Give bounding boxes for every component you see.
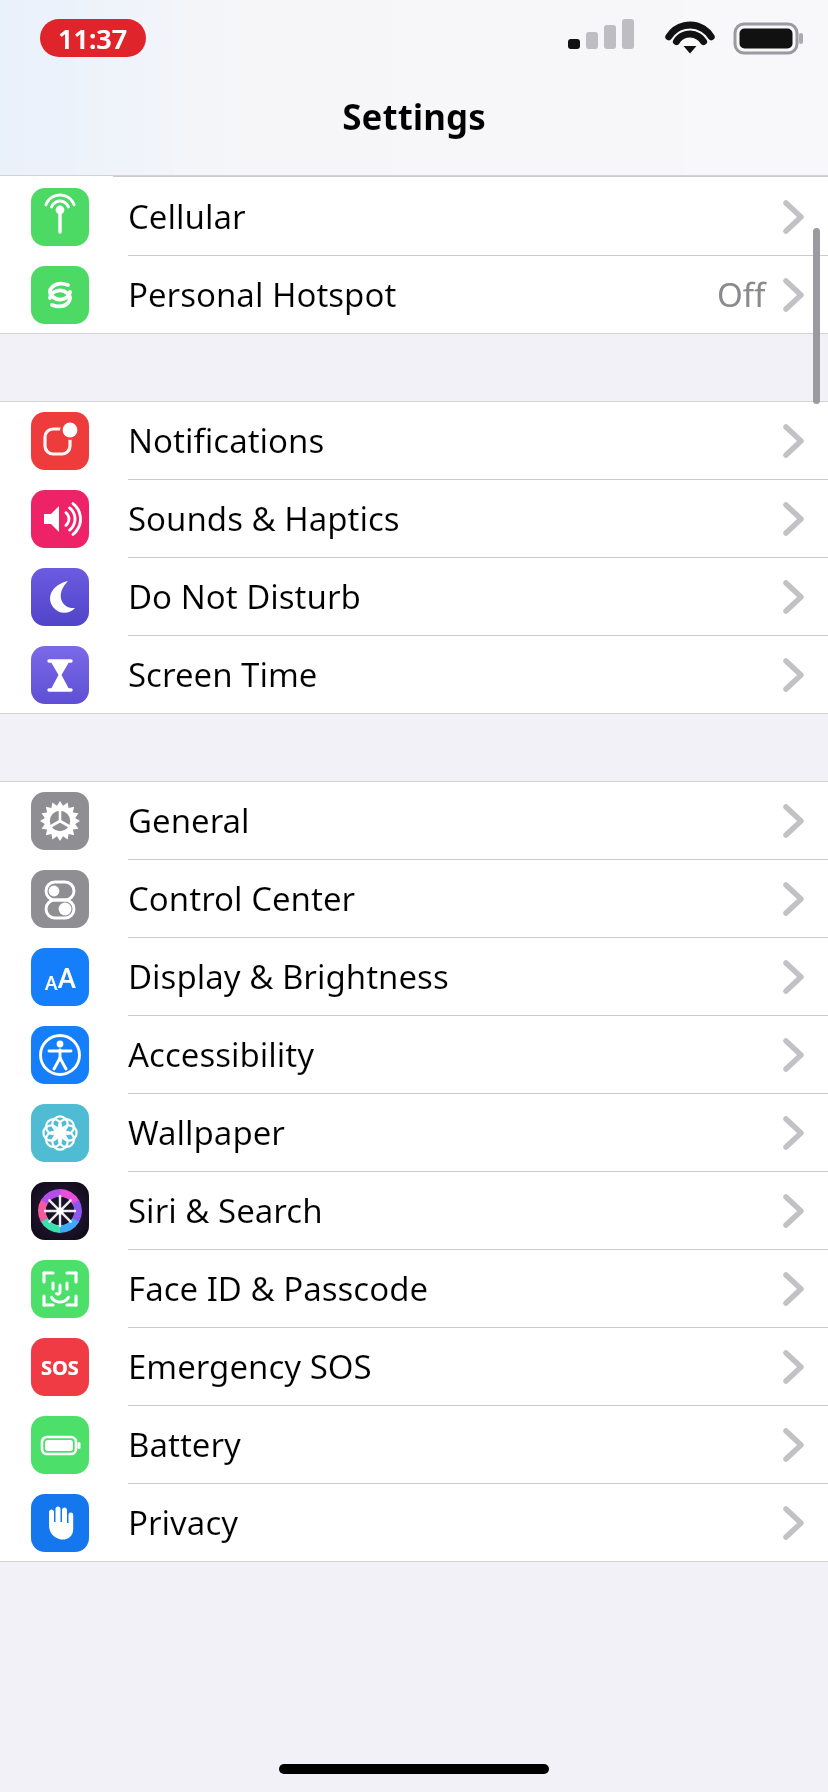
staticText: Emergency SOS [128,1344,372,1389]
staticText: Cellular [128,194,246,239]
staticText: A [45,970,58,996]
button[interactable]: General [0,782,828,859]
button[interactable]: Siri & Search [0,1172,828,1249]
staticText: A [58,959,76,996]
button[interactable]: A [0,938,828,1015]
button[interactable]: Control Center [0,860,828,937]
staticText: Notifications [128,418,325,463]
staticText: SOS [41,1354,79,1381]
button[interactable]: SOS [0,1328,828,1405]
staticText: Accessibility [128,1032,315,1077]
button[interactable]: Notifications [0,402,828,479]
button[interactable]: Wallpaper [0,1094,828,1171]
staticText: Control Center [128,876,356,921]
staticText: General [128,798,250,843]
staticText: Do Not Disturb [128,574,361,619]
button[interactable]: Do Not Disturb [0,558,828,635]
button[interactable]: Battery [0,1406,828,1483]
button[interactable]: Sounds & Haptics [0,480,828,557]
staticText: Off [717,272,766,317]
staticText: Siri & Search [128,1188,323,1233]
button[interactable]: Accessibility [0,1016,828,1093]
staticText: Wallpaper [128,1110,285,1155]
button[interactable]: Screen Time [0,636,828,713]
staticText: Personal Hotspot [128,272,397,317]
staticText: Display & Brightness [128,954,449,999]
staticText: Battery [128,1422,241,1467]
button[interactable]: Personal Hotspot [0,256,828,333]
button[interactable]: Privacy [0,1484,828,1561]
button[interactable]: Cellular [0,178,828,255]
staticText: Face ID & Passcode [128,1266,429,1311]
staticText: Privacy [128,1500,239,1545]
staticText: Screen Time [128,652,318,697]
staticText: Sounds & Haptics [128,496,400,541]
staticText: 11:37 [58,20,128,57]
staticText: Settings [342,93,486,141]
button[interactable]: Face ID & Passcode [0,1250,828,1327]
